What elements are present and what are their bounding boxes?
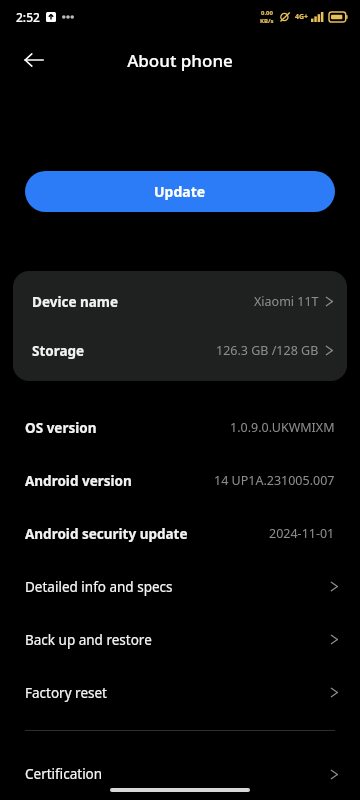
staticText: 14 UP1A.231005.007 bbox=[214, 472, 335, 489]
button[interactable]: Update bbox=[25, 171, 335, 212]
button[interactable]: Android version bbox=[0, 454, 360, 507]
staticText: Update bbox=[154, 182, 206, 201]
staticText: 126.3 GB /128 GB bbox=[216, 342, 319, 359]
staticText: OS version bbox=[25, 419, 97, 437]
button[interactable]: Detailed info and specs bbox=[0, 560, 360, 613]
staticText: 4G+ bbox=[295, 12, 309, 22]
button[interactable]: Back up and restore bbox=[0, 613, 360, 666]
staticText: Device name bbox=[32, 293, 119, 311]
staticText: Android security update bbox=[25, 525, 188, 543]
staticText: About phone bbox=[127, 49, 233, 72]
staticText: Back up and restore bbox=[25, 631, 152, 649]
button[interactable]: Back bbox=[12, 38, 56, 82]
staticText: 2024-11-01 bbox=[269, 525, 335, 542]
button[interactable]: Device name bbox=[13, 277, 347, 326]
staticText: 0.00 bbox=[261, 9, 273, 17]
staticText: Android version bbox=[25, 472, 132, 490]
staticText: 2:52 bbox=[16, 9, 40, 25]
staticText: Factory reset bbox=[25, 684, 107, 702]
staticText: Detailed info and specs bbox=[25, 578, 173, 596]
button[interactable]: Storage bbox=[13, 326, 347, 375]
staticText: Xiaomi 11T bbox=[254, 293, 319, 310]
staticText: Certification bbox=[25, 765, 103, 783]
staticText: 1.0.9.0.UKWMIXM bbox=[230, 419, 335, 436]
staticText: Storage bbox=[32, 342, 85, 360]
button[interactable]: OS version bbox=[0, 401, 360, 454]
button[interactable]: Factory reset bbox=[0, 666, 360, 719]
staticText: KB/s bbox=[260, 17, 274, 25]
button[interactable]: Certification bbox=[0, 748, 360, 800]
button[interactable]: Android security update bbox=[0, 507, 360, 560]
